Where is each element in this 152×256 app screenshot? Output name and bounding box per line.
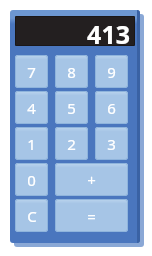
button[interactable]: Clear <box>15 199 48 232</box>
staticText: 4 <box>27 98 36 118</box>
staticText: C <box>27 206 37 226</box>
button[interactable]: 9 <box>95 55 128 88</box>
button[interactable]: 7 <box>15 55 48 88</box>
button[interactable]: Plus <box>55 163 128 196</box>
staticText: 0 <box>27 170 36 190</box>
staticText: 413 <box>87 17 130 45</box>
staticText: 2 <box>67 134 76 154</box>
staticText: 8 <box>67 62 76 82</box>
staticText: 9 <box>107 62 116 82</box>
staticText: + <box>87 170 96 190</box>
staticText: 5 <box>67 98 76 118</box>
button[interactable]: 3 <box>95 127 128 160</box>
staticText: 7 <box>27 62 36 82</box>
staticText: 3 <box>107 134 116 154</box>
button[interactable]: 5 <box>55 91 88 124</box>
button[interactable]: 1 <box>15 127 48 160</box>
button[interactable]: Equals <box>55 199 128 232</box>
staticText: 1 <box>27 134 36 154</box>
button[interactable]: 6 <box>95 91 128 124</box>
staticText: = <box>87 206 96 226</box>
button[interactable]: 0 <box>15 163 48 196</box>
button[interactable]: 4 <box>15 91 48 124</box>
button[interactable]: 2 <box>55 127 88 160</box>
button[interactable]: 8 <box>55 55 88 88</box>
staticText: 6 <box>107 98 116 118</box>
